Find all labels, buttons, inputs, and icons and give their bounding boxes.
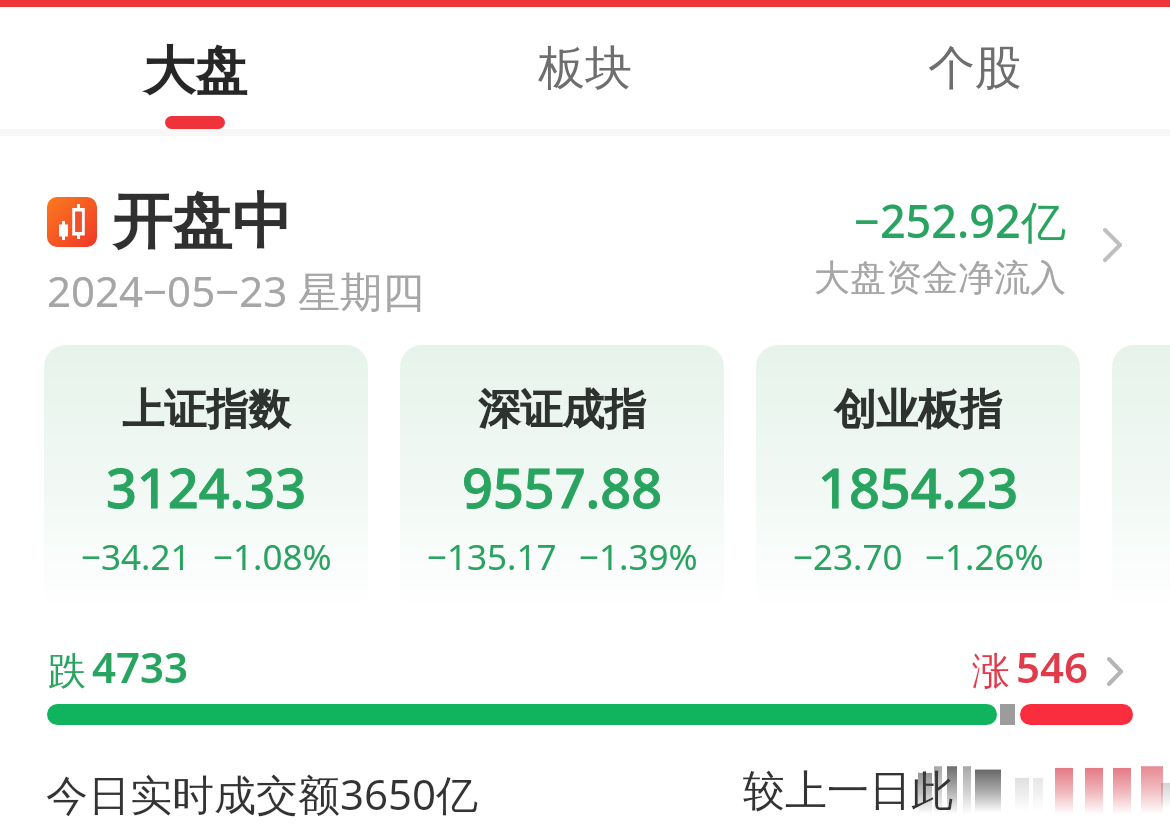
button[interactable]: 大盘 xyxy=(0,0,390,136)
button[interactable]: 上证指数 xyxy=(44,345,368,612)
staticText: 9557.88 xyxy=(462,450,663,524)
staticText: 创业板指 xyxy=(835,383,1003,436)
staticText: 3124.33 xyxy=(106,450,307,524)
staticText: 较上一日此 xyxy=(743,765,953,818)
staticText: −1.08% xyxy=(213,533,332,581)
staticText: 2024−05−23 星期四 xyxy=(47,262,425,319)
staticText: −23.70 xyxy=(793,533,903,581)
staticText: 1854.23 xyxy=(818,450,1019,524)
button[interactable]: 个股 xyxy=(780,0,1170,136)
staticText: 板块 xyxy=(538,39,632,98)
button[interactable]: 跌 xyxy=(48,638,1128,695)
staticText: 4733 xyxy=(92,638,189,695)
button[interactable]: 创业板指 xyxy=(756,345,1080,612)
staticText: 开盘中 xyxy=(112,184,292,260)
staticText: 1854.23 xyxy=(818,450,1019,524)
staticText: 3124.33 xyxy=(106,450,307,524)
button[interactable]: Gainers and losers details xyxy=(1107,657,1123,686)
staticText: 跌 xyxy=(48,647,86,695)
staticText: 上证指数 xyxy=(123,383,291,436)
staticText: −34.21 xyxy=(81,533,191,581)
staticText: 创业板指 xyxy=(835,383,1003,436)
other: Market status xyxy=(47,197,97,247)
button[interactable]: 板块 xyxy=(390,0,780,136)
staticText: −1.26% xyxy=(925,533,1044,581)
staticText: 546 xyxy=(1016,638,1089,695)
staticText: 今日实时成交额3650亿 xyxy=(46,765,479,822)
staticText: −135.17 xyxy=(427,533,557,581)
staticText: 深证成指 xyxy=(479,383,647,436)
button[interactable]: More indices xyxy=(1112,345,1170,612)
button[interactable]: Capital flow details xyxy=(1103,228,1122,262)
staticText: −1.39% xyxy=(579,533,698,581)
staticText: 深证成指 xyxy=(479,383,647,436)
staticText: 9557.88 xyxy=(462,450,663,524)
button[interactable]: 深证成指 xyxy=(400,345,724,612)
button[interactable]: Market status xyxy=(47,184,1122,319)
staticText: −252.92亿 xyxy=(854,190,1066,251)
staticText: 大盘 xyxy=(143,39,247,105)
staticText: 上证指数 xyxy=(123,383,291,436)
staticText: 个股 xyxy=(928,39,1022,98)
staticText: 涨 xyxy=(972,647,1010,695)
staticText: 大盘资金净流入 xyxy=(814,255,1066,300)
